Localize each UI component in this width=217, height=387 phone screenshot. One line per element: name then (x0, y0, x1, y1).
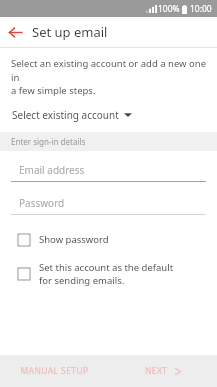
staticText: Set up email (32, 23, 108, 41)
button[interactable]: Back (0, 17, 30, 47)
staticText: Show password (39, 233, 109, 246)
button[interactable]: Set this account as the default (0, 258, 217, 290)
staticText: 100% (158, 3, 180, 15)
staticText: Enter sign-in details (11, 136, 86, 147)
staticText: MANUAL SETUP (20, 365, 89, 377)
staticText: NEXT (145, 365, 168, 377)
button[interactable]: Select existing account (11, 106, 133, 124)
button[interactable]: NEXT (108, 355, 217, 387)
button[interactable]: Email address (11, 163, 206, 182)
staticText: Set this account as the default (39, 261, 174, 274)
staticText: Password (19, 196, 65, 210)
staticText: 10:00 (190, 3, 212, 15)
staticText: for sending emails. (39, 274, 125, 287)
staticText: Email address (19, 163, 85, 177)
button[interactable]: Password (11, 196, 206, 215)
staticText: Select an existing account or add a new … (11, 57, 207, 96)
button[interactable]: Show password (0, 230, 217, 249)
button[interactable]: MANUAL SETUP (0, 355, 108, 387)
staticText: Select existing account (12, 108, 119, 122)
